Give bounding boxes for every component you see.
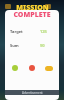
staticText: Advertisement xyxy=(22,91,43,95)
button[interactable]: Next level xyxy=(12,65,18,71)
staticText: Target xyxy=(10,29,23,34)
staticText: Sum xyxy=(10,43,19,48)
staticText: 125 xyxy=(40,29,47,34)
button[interactable]: Advertisement xyxy=(5,90,59,95)
staticText: COMPLETE xyxy=(13,10,51,20)
staticText: 90 xyxy=(40,43,45,48)
button[interactable]: Restart xyxy=(29,65,35,71)
button[interactable]: Coins xyxy=(45,66,53,71)
staticText: MISSION xyxy=(16,3,49,13)
